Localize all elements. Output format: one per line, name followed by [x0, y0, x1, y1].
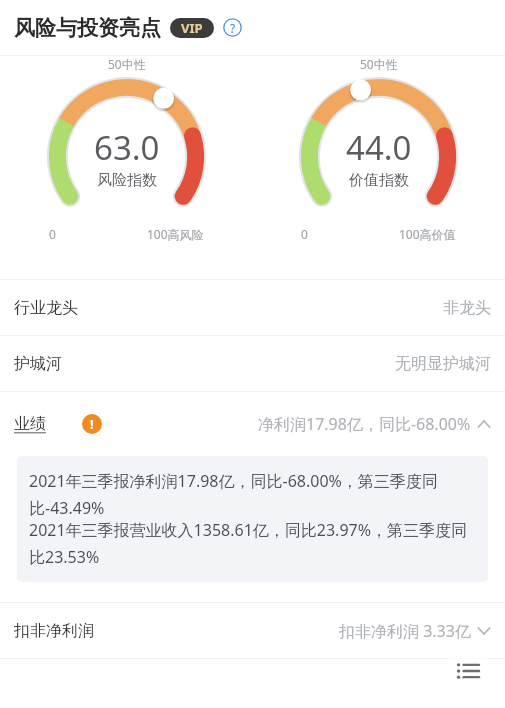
button[interactable]: Menu — [445, 648, 491, 694]
button[interactable]: 业绩 — [0, 392, 505, 456]
staticText: 非龙头 — [443, 298, 491, 318]
button[interactable]: Help — [223, 18, 242, 37]
staticText: 风险与投资亮点 — [14, 15, 161, 41]
staticText: 44.0 — [346, 125, 412, 170]
staticText: 50中性 — [108, 56, 146, 72]
staticText: 50中性 — [360, 56, 398, 72]
staticText: 净利润17.98亿，同比-68.00% — [258, 413, 471, 435]
button[interactable]: 护城河 — [0, 336, 505, 391]
staticText: 业绩 — [14, 414, 46, 434]
button[interactable]: 扣非净利润 — [0, 603, 505, 658]
staticText: 63.0 — [94, 125, 160, 170]
staticText: 扣非净利润 — [14, 621, 94, 641]
staticText: 无明显护城河 — [395, 354, 491, 374]
staticText: 2021年三季报净利润17.98亿，同比-68.00%，第三季度同比-43.49… — [29, 470, 476, 519]
staticText: VIP — [181, 19, 203, 37]
staticText: ! — [90, 415, 94, 433]
staticText: 0 — [301, 226, 308, 242]
button[interactable]: VIP — [170, 18, 214, 38]
staticText: 扣非净利润 3.33亿 — [339, 620, 471, 642]
staticText: 护城河 — [14, 354, 62, 374]
staticText: 0 — [49, 226, 56, 242]
staticText: 风险指数 — [97, 171, 157, 190]
staticText: 价值指数 — [349, 171, 409, 190]
staticText: 行业龙头 — [14, 298, 78, 318]
staticText: 100高价值 — [399, 226, 456, 242]
staticText: 100高风险 — [147, 226, 204, 242]
staticText: ? — [230, 20, 236, 36]
button[interactable]: 行业龙头 — [0, 280, 505, 335]
staticText: 2021年三季报营业收入1358.61亿，同比23.97%，第三季度同比23.5… — [29, 519, 476, 568]
